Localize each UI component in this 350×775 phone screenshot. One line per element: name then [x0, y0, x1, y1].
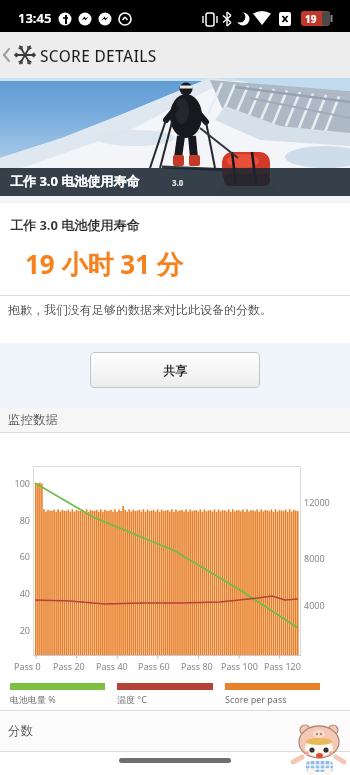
staticText: 电池电量 %	[10, 693, 56, 705]
staticText: Pass 0	[14, 660, 41, 672]
staticText: 4000	[304, 599, 325, 611]
staticText: 13:45	[18, 9, 52, 27]
staticText: Pass 60	[138, 660, 170, 672]
button[interactable]	[119, 758, 231, 763]
staticText: 温度 °C	[117, 693, 147, 705]
staticText: 抱歉，我们没有足够的数据来对比此设备的分数。	[8, 302, 272, 317]
staticText: SCORE DETAILS	[40, 45, 157, 66]
staticText: 19	[305, 12, 317, 26]
button[interactable]: 共享	[90, 352, 260, 388]
staticText: 40	[19, 587, 30, 599]
staticText: 80	[19, 514, 30, 526]
staticText: Pass 80	[181, 660, 213, 672]
staticText: 100	[14, 477, 30, 489]
button[interactable]	[0, 32, 14, 78]
staticText: Score per pass	[225, 693, 287, 705]
staticText: 60	[19, 550, 30, 562]
staticText: 8000	[304, 552, 325, 564]
staticText: Pass 120	[264, 660, 301, 672]
staticText: 工作 3.0 电池使用寿命	[10, 216, 140, 234]
staticText: 19 小时 31 分	[25, 246, 183, 282]
staticText: 3.0	[172, 177, 184, 188]
staticText: Pass 40	[96, 660, 128, 672]
staticText: 共享	[163, 363, 187, 378]
staticText: Pass 100	[221, 660, 258, 672]
staticText: 分数	[8, 723, 33, 739]
staticText: 20	[19, 624, 30, 636]
staticText: Pass 20	[53, 660, 85, 672]
staticText: 监控数据	[8, 412, 58, 428]
staticText: 12000	[304, 496, 330, 508]
staticText: 工作 3.0 电池使用寿命	[10, 172, 140, 190]
